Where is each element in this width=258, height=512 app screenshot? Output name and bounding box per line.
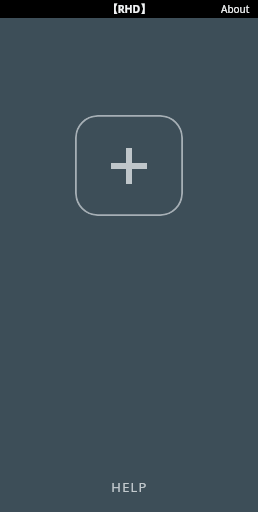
- button[interactable]: Add: [75, 115, 183, 216]
- staticText: About: [221, 2, 250, 16]
- staticText: 【RHD】: [107, 2, 151, 16]
- button[interactable]: About: [213, 0, 258, 18]
- button[interactable]: HELP: [95, 474, 164, 500]
- staticText: HELP: [111, 478, 148, 496]
